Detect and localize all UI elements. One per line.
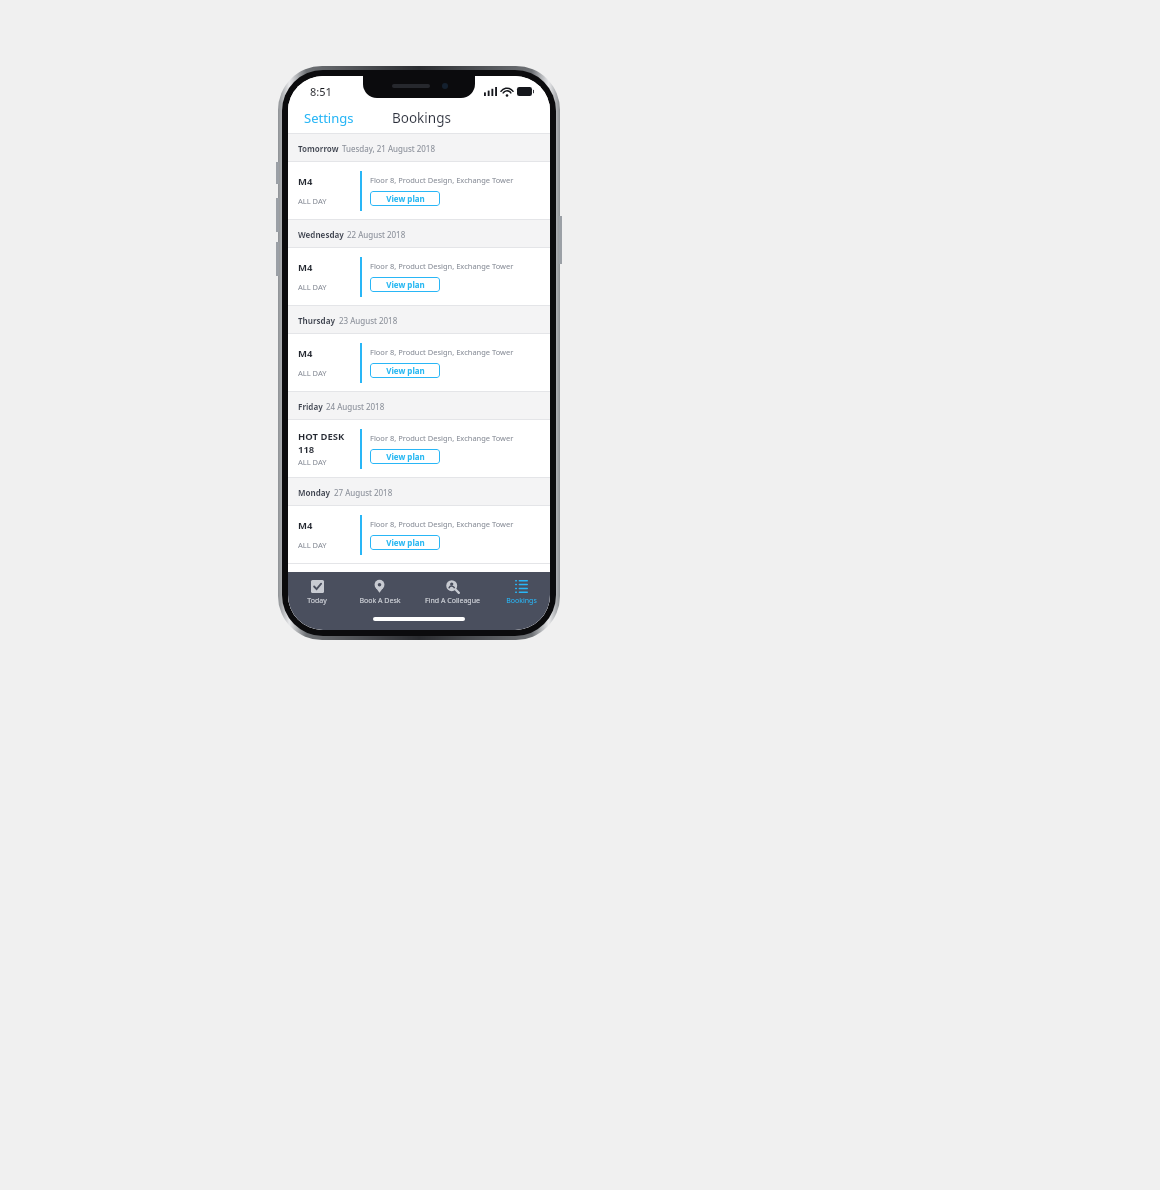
staticText: Settings [304, 109, 354, 127]
other: Today [311, 580, 324, 593]
staticText: Tuesday, 21 August 2018 [342, 143, 435, 154]
button[interactable]: View plan [370, 277, 440, 292]
staticText: 118 [298, 443, 315, 456]
button[interactable]: Book A Desk [346, 572, 413, 614]
button[interactable]: View plan [370, 535, 440, 550]
staticText: Book A Desk [359, 596, 401, 606]
other: Bookings [515, 580, 528, 593]
staticText: 22 August 2018 [347, 229, 406, 240]
staticText: Floor 8, Product Design, Exchange Tower [370, 175, 514, 185]
staticText: 27 August 2018 [334, 487, 393, 498]
staticText: M4 [298, 261, 313, 274]
staticText: ALL DAY [298, 540, 327, 550]
staticText: Wednesday [298, 229, 344, 240]
staticText: ALL DAY [298, 457, 327, 467]
button[interactable]: Find A Colleague [413, 572, 492, 614]
button[interactable]: View plan [370, 363, 440, 378]
staticText: View plan [386, 537, 425, 548]
staticText: Thursday [298, 315, 336, 326]
staticText: Floor 8, Product Design, Exchange Tower [370, 519, 514, 529]
button[interactable]: M4 [288, 334, 550, 391]
staticText: Bookings [392, 109, 451, 127]
staticText: 23 August 2018 [339, 315, 398, 326]
staticText: View plan [386, 451, 425, 462]
other: Find A Colleague [446, 580, 459, 593]
staticText: View plan [386, 193, 425, 204]
staticText: View plan [386, 279, 425, 290]
button[interactable]: M4 [288, 506, 550, 563]
button[interactable]: Today [288, 572, 346, 614]
staticText: M4 [298, 175, 313, 188]
button[interactable]: M4 [288, 162, 550, 219]
button[interactable]: View plan [370, 449, 440, 464]
staticText: M4 [298, 519, 313, 532]
button[interactable]: HOT DESK [288, 420, 550, 477]
staticText: Floor 8, Product Design, Exchange Tower [370, 347, 514, 357]
staticText: Bookings [506, 596, 537, 606]
button[interactable]: Settings [288, 105, 364, 131]
staticText: Tomorrow [298, 143, 339, 154]
staticText: Floor 8, Product Design, Exchange Tower [370, 261, 514, 271]
staticText: HOT DESK [298, 430, 345, 443]
staticText: ALL DAY [298, 196, 327, 206]
staticText: 8:51 [310, 84, 332, 99]
staticText: Find A Colleague [425, 596, 480, 606]
staticText: ALL DAY [298, 282, 327, 292]
staticText: Friday [298, 401, 323, 412]
staticText: ALL DAY [298, 368, 327, 378]
staticText: Today [307, 596, 327, 606]
staticText: 24 August 2018 [326, 401, 385, 412]
other: Book A Desk [373, 580, 386, 593]
staticText: View plan [386, 365, 425, 376]
button[interactable]: M4 [288, 248, 550, 305]
button[interactable]: View plan [370, 191, 440, 206]
staticText: Floor 8, Product Design, Exchange Tower [370, 433, 514, 443]
button[interactable]: Bookings [492, 572, 550, 614]
staticText: Monday [298, 487, 331, 498]
staticText: M4 [298, 347, 313, 360]
